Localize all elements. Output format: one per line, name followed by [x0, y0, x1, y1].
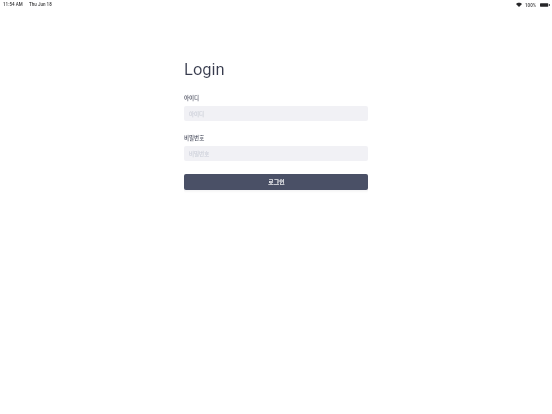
staticText: 로그인: [268, 177, 285, 186]
staticText: 100%: [525, 3, 537, 8]
button[interactable]: 로그인: [184, 174, 368, 190]
staticText: 아이디: [184, 94, 200, 102]
staticText: 11:54 AM: [3, 2, 23, 7]
staticText: 비밀번호: [184, 134, 205, 142]
staticText: 비밀번호: [189, 150, 210, 158]
staticText: 아이디: [189, 110, 205, 118]
staticText: Login: [184, 60, 225, 79]
other: Battery full: [540, 2, 550, 8]
button[interactable]: 비밀번호: [184, 146, 368, 161]
staticText: Thu Jun 18: [29, 2, 52, 7]
other: Wi-Fi: [516, 3, 522, 7]
